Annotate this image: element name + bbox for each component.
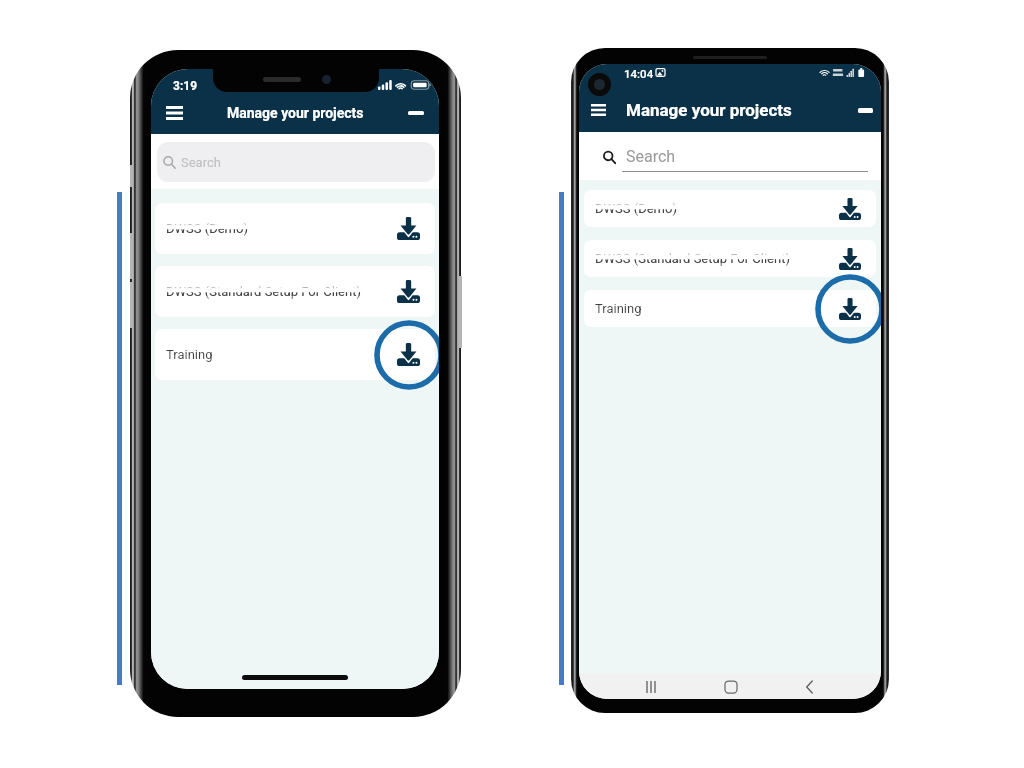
staticText: DWSS (Demo) xyxy=(595,201,677,216)
staticText: DWSS (Standard Setup For Client) xyxy=(166,284,361,299)
button[interactable]: Download DWSS (Demo) xyxy=(839,190,861,227)
button[interactable]: Home xyxy=(709,674,753,699)
button[interactable]: DWSS (Demo) xyxy=(155,203,435,254)
staticText: DWSS (Standard Setup For Client) xyxy=(595,251,790,266)
staticText: DWSS (Demo) xyxy=(166,221,248,236)
button[interactable]: Download Training xyxy=(397,329,420,380)
staticText: 14:04 xyxy=(624,67,654,80)
button[interactable]: Training xyxy=(155,329,435,380)
button[interactable]: Download DWSS (Demo) xyxy=(397,203,420,254)
staticText: DWSS (Standard Setup For Client) xyxy=(595,251,790,266)
staticText: DWSS (Demo) xyxy=(595,201,677,216)
button[interactable]: Search xyxy=(157,142,435,182)
staticText: DWSS (Demo) xyxy=(166,221,248,236)
staticText: Search xyxy=(181,155,221,170)
staticText: DWSS (Standard Setup For Client) xyxy=(166,284,361,299)
button[interactable]: Download Training xyxy=(839,290,861,327)
button[interactable]: DWSS (Standard Setup For Client) xyxy=(584,240,876,277)
button[interactable]: Minimize xyxy=(850,88,881,132)
button[interactable]: Back xyxy=(787,674,831,699)
staticText: Search xyxy=(626,147,676,166)
button[interactable]: Menu xyxy=(151,92,197,134)
button[interactable]: DWSS (Demo) xyxy=(584,190,876,227)
staticText: Training xyxy=(166,347,213,362)
button[interactable]: Training xyxy=(584,290,876,327)
button[interactable]: Recents xyxy=(629,674,673,699)
button[interactable]: DWSS (Standard Setup For Client) xyxy=(155,266,435,317)
button[interactable]: Minimize xyxy=(393,92,439,134)
button[interactable]: Download DWSS (Standard Setup For Client… xyxy=(397,266,420,317)
staticText: 3:19 xyxy=(173,79,198,93)
staticText: Manage your projects xyxy=(626,100,792,120)
button[interactable]: Menu xyxy=(579,88,618,132)
staticText: Manage your projects xyxy=(227,105,364,121)
staticText: Training xyxy=(595,301,642,316)
button[interactable]: Download DWSS (Standard Setup For Client… xyxy=(839,240,861,277)
